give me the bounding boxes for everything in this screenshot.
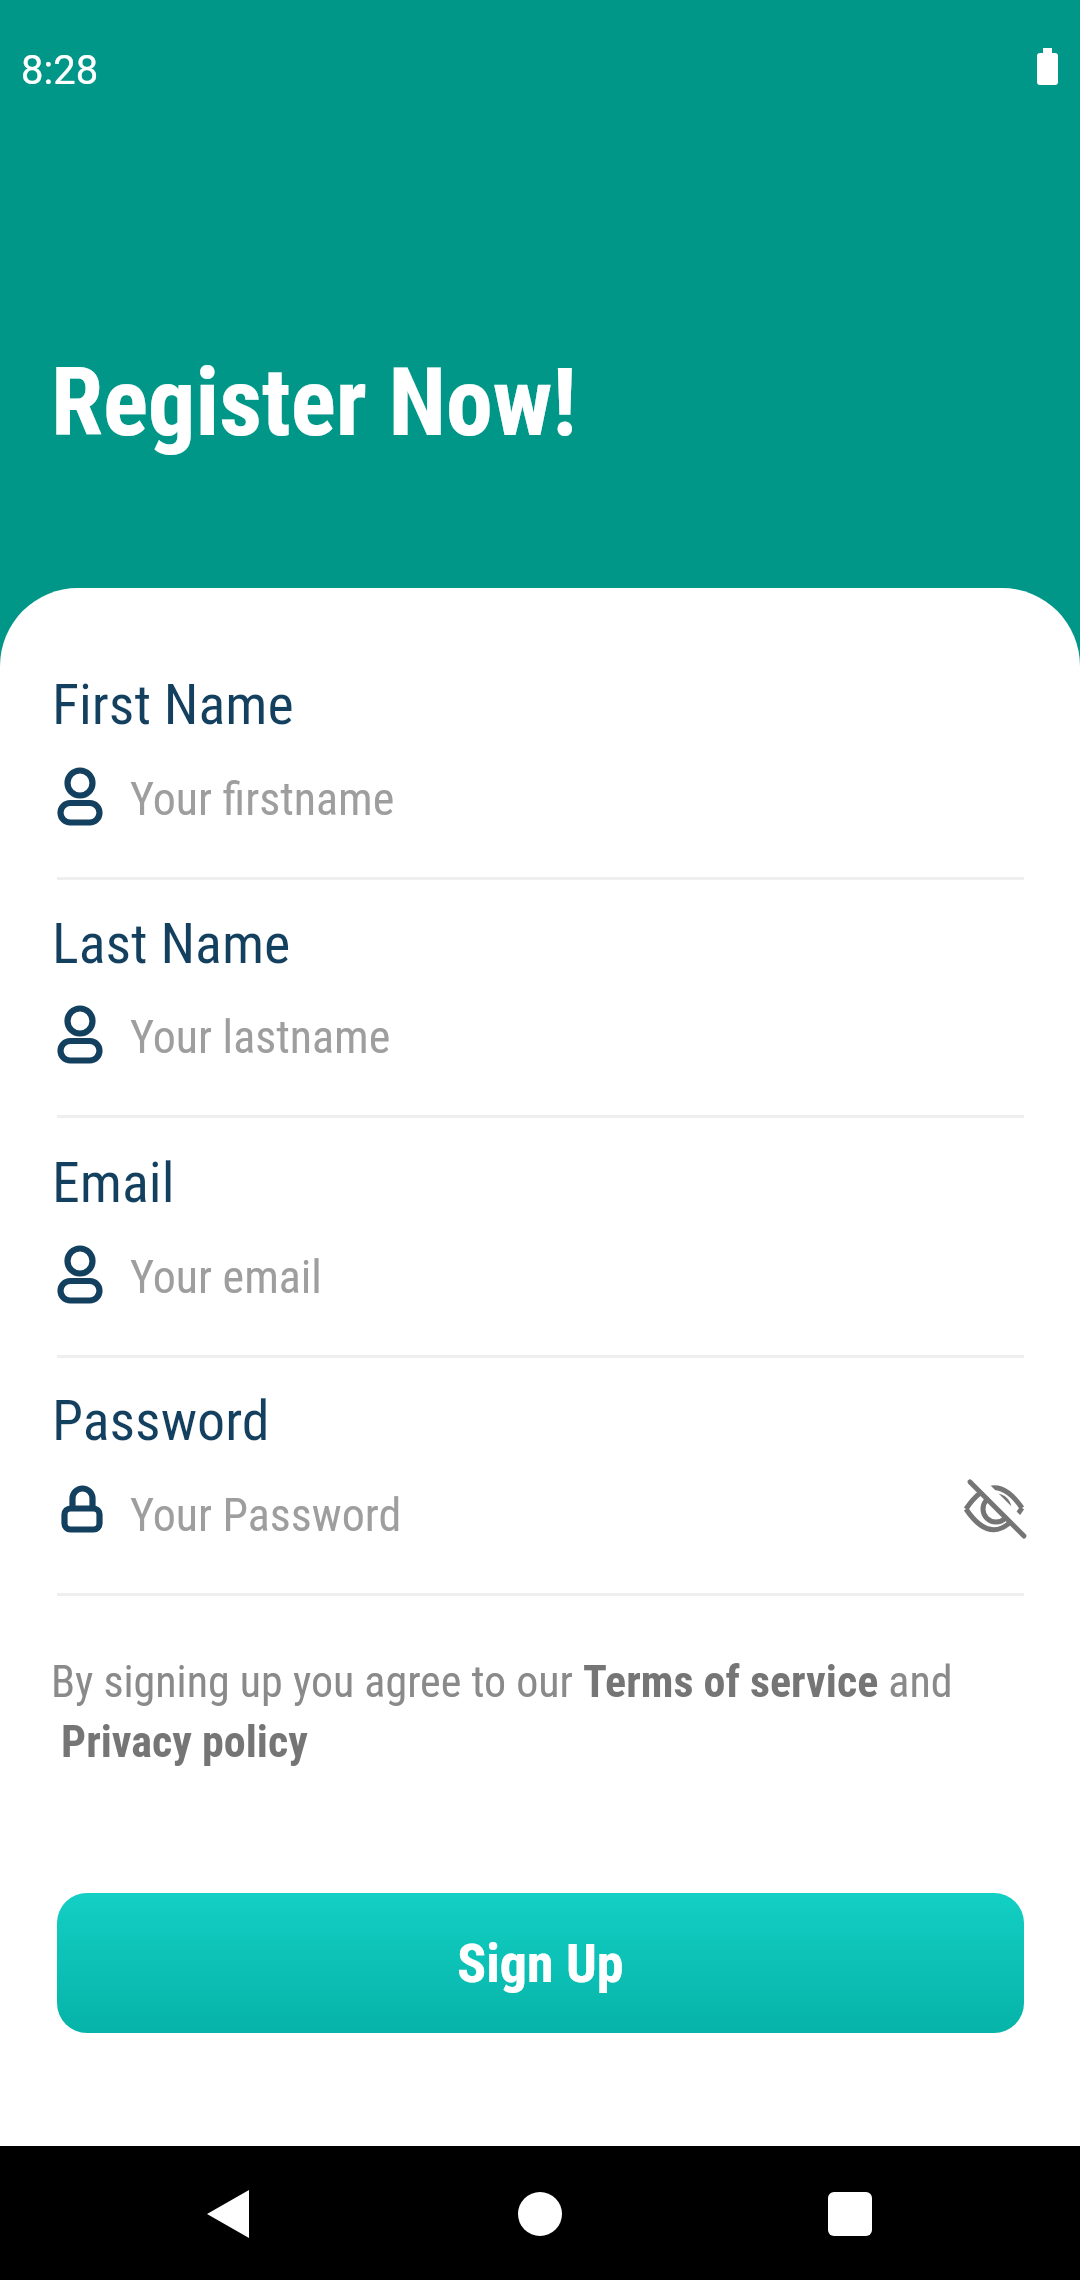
staticText: Last Name [52, 911, 291, 977]
button[interactable] [502, 2176, 577, 2251]
staticText: 8:28 [21, 47, 99, 94]
staticText: Your Password [130, 1488, 402, 1542]
button[interactable]: Your Password [57, 1480, 1024, 1550]
button[interactable] [190, 2176, 265, 2251]
button[interactable]: Your firstname [57, 764, 1024, 834]
button[interactable] [966, 1478, 1026, 1538]
staticText: First Name [52, 672, 294, 738]
button[interactable]: Your lastname [57, 1002, 1024, 1072]
staticText: Sign Up [457, 1932, 624, 1995]
staticText: Your email [130, 1250, 322, 1304]
staticText: Your lastname [130, 1010, 391, 1064]
staticText: Your firstname [130, 772, 395, 826]
staticText: Password [52, 1388, 270, 1454]
staticText: Email [52, 1150, 175, 1216]
button[interactable] [812, 2176, 887, 2251]
button[interactable] [584, 1652, 878, 1710]
staticText: By signing up you agree to our Terms of … [51, 1656, 953, 1767]
button[interactable] [60, 1712, 310, 1770]
button[interactable]: Your email [57, 1242, 1024, 1312]
staticText: Register Now! [51, 348, 577, 458]
button[interactable]: Sign Up [57, 1893, 1024, 2033]
